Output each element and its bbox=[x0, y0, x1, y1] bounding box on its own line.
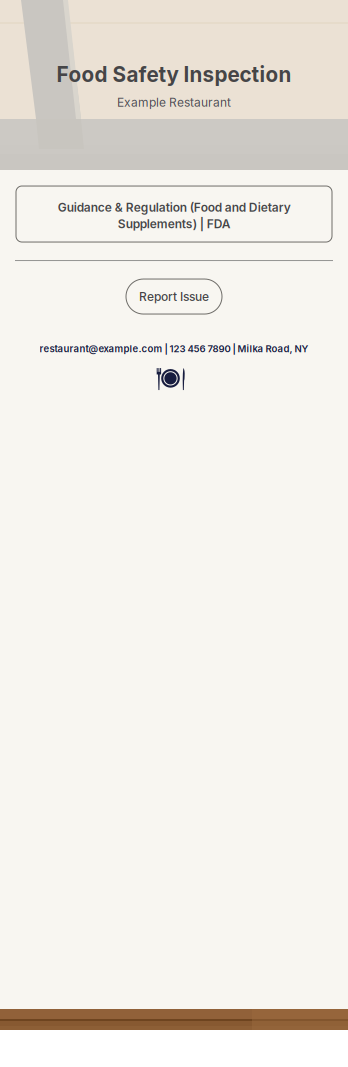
button[interactable]: Guidance & Regulation (Food and Dietary … bbox=[16, 186, 332, 242]
staticText: Guidance & Regulation (Food and Dietary … bbox=[57, 200, 290, 231]
staticText: restaurant@example.com | 123 456 7890 | … bbox=[39, 343, 308, 355]
staticText: Food Safety Inspection bbox=[56, 62, 291, 87]
button[interactable]: Report Issue bbox=[126, 279, 222, 314]
staticText: Report Issue bbox=[139, 289, 209, 304]
staticText: Example Restaurant bbox=[117, 95, 231, 109]
